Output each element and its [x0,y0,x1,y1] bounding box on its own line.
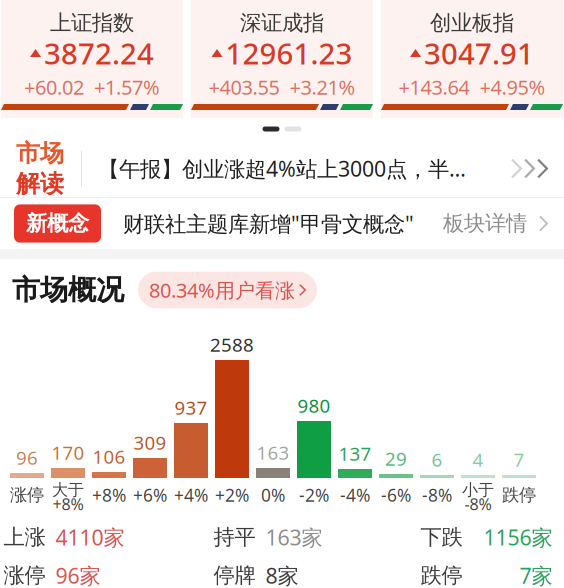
staticText: 3047.91 [424,33,534,72]
staticText: +60.02 [24,74,84,100]
button[interactable]: 80.34%用户看涨 [138,272,317,308]
staticText: +1.57% [94,74,160,100]
staticText: -2% [299,483,329,506]
staticText: 170 [51,440,84,465]
staticText: 上证指数 [50,10,134,36]
staticText: +3.21% [289,74,355,100]
staticText: 市场 [16,138,64,168]
staticText: -4% [340,483,370,506]
staticText: 980 [297,393,330,418]
staticText: 96家 [55,561,100,588]
staticText: -8% [422,483,452,506]
staticText: 新概念 [26,210,89,237]
staticText: +8% [52,493,83,515]
staticText: 937 [174,395,207,420]
staticText: 解读 [16,169,64,198]
staticText: 80.34%用户看涨 [149,277,295,303]
staticText: 1156家 [483,523,552,551]
staticText: 下跌 [420,524,462,550]
button[interactable]: 深证成指 [191,0,373,118]
staticText: 0% [261,483,285,506]
staticText: 7 [513,447,524,472]
staticText: 跌停 [502,484,536,506]
staticText: 停牌 [213,562,255,588]
staticText: 8家 [265,561,298,588]
staticText: +403.55 [208,74,279,100]
staticText: 309 [133,430,166,455]
staticText: -6% [381,483,411,506]
staticText: +8% [92,483,126,506]
staticText: +6% [133,483,167,506]
button[interactable]: 新概念 [0,198,564,249]
button[interactable]: 创业板指 [381,0,563,118]
staticText: 12961.23 [225,33,352,72]
button[interactable]: 市场 [0,140,564,197]
staticText: 7家 [519,561,552,588]
staticText: 板块详情 [443,210,527,237]
staticText: 创业板指 [430,10,514,36]
staticText: 137 [338,441,371,466]
staticText: +143.64 [398,74,469,100]
button[interactable]: 上证指数 [1,0,183,118]
staticText: 上涨 [3,524,45,550]
staticText: +4.95% [479,74,545,100]
staticText: 4 [472,447,483,472]
staticText: -8% [464,493,491,515]
staticText: 2588 [210,332,254,357]
staticText: 29 [385,446,407,471]
staticText: 96 [16,445,38,470]
staticText: 涨停 [10,484,44,506]
staticText: 财联社主题库新增"甲骨文概念" [123,209,414,238]
staticText: 163家 [265,523,322,551]
staticText: 6 [431,447,442,472]
staticText: +2% [215,483,249,506]
staticText: 大于 [52,480,84,500]
staticText: 持平 [213,524,255,550]
staticText: 3872.24 [44,33,154,72]
staticText: 【午报】创业涨超4%站上3000点，半… [98,154,466,183]
staticText: 106 [92,444,125,469]
staticText: +4% [174,483,208,506]
staticText: 4110家 [55,523,124,551]
staticText: 163 [256,440,289,465]
staticText: 跌停 [420,562,462,588]
staticText: 涨停 [3,562,45,588]
staticText: 深证成指 [240,10,324,36]
staticText: 市场概况 [12,273,124,307]
staticText: 小于 [462,480,494,500]
